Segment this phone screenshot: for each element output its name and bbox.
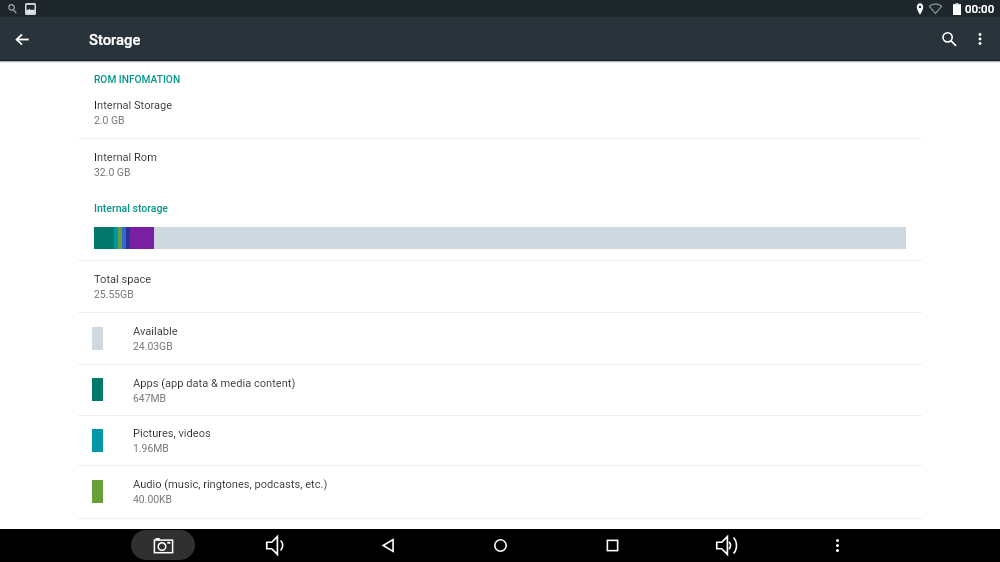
button[interactable]: Home	[484, 529, 516, 562]
button[interactable]	[0, 139, 1000, 189]
staticText: Internal Rom	[94, 151, 157, 164]
button[interactable]: Search	[927, 17, 971, 61]
staticText: Internal storage	[94, 202, 169, 214]
staticText: Audio (music, ringtones, podcasts, etc.)	[133, 478, 328, 491]
staticText: 24.03GB	[133, 340, 173, 352]
button[interactable]	[0, 261, 1000, 311]
staticText: 647MB	[133, 392, 167, 404]
button[interactable]: More	[821, 529, 853, 562]
staticText: Available	[133, 325, 178, 338]
button[interactable]	[0, 88, 1000, 138]
button[interactable]: Audio (music, ringtones, podcasts, etc.)	[0, 465, 1000, 517]
button[interactable]: Available	[0, 312, 1000, 364]
staticText: Apps (app data & media content)	[133, 377, 296, 390]
staticText: 00:00	[965, 2, 995, 15]
staticText: Storage	[89, 31, 141, 48]
staticText: Internal Storage	[94, 99, 173, 112]
button[interactable]: Back	[372, 529, 404, 562]
staticText: 25.55GB	[94, 288, 134, 300]
button[interactable]: Screenshot	[131, 530, 195, 560]
button[interactable]: Apps (app data & media content)	[0, 364, 1000, 415]
button[interactable]: Volume up	[709, 529, 741, 562]
button[interactable]: Pictures, videos	[0, 415, 1000, 466]
staticText: Total space	[94, 273, 152, 286]
button[interactable]: Volume down	[259, 529, 291, 562]
button[interactable]: Recent apps	[596, 529, 628, 562]
staticText: 1.96MB	[133, 442, 169, 454]
staticText: ROM INFOMATION	[94, 74, 181, 86]
staticText: 40.00KB	[133, 493, 173, 505]
staticText: Pictures, videos	[133, 427, 211, 440]
staticText: 32.0 GB	[94, 166, 131, 178]
button[interactable]: More options	[958, 17, 1000, 61]
staticText: 2.0 GB	[94, 114, 125, 126]
button[interactable]: Navigate up	[0, 17, 44, 61]
